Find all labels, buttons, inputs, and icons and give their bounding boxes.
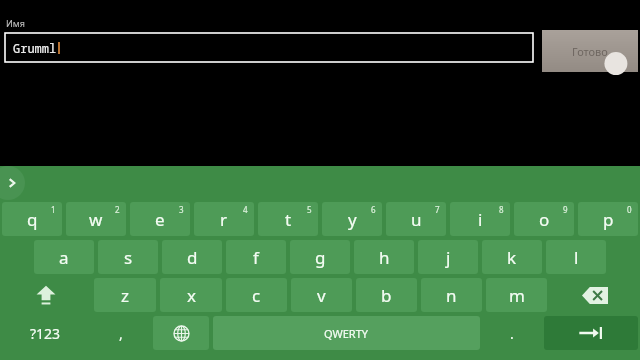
- button[interactable]: Готово: [542, 30, 638, 72]
- button[interactable]: ,: [93, 316, 149, 350]
- button[interactable]: Next field: [544, 316, 638, 350]
- staticText: y: [348, 208, 357, 231]
- button[interactable]: h: [354, 240, 414, 274]
- staticText: h: [379, 246, 390, 269]
- button[interactable]: ?123: [2, 316, 89, 350]
- button[interactable]: m: [486, 278, 547, 312]
- staticText: x: [187, 284, 196, 307]
- staticText: b: [381, 284, 392, 307]
- staticText: e: [155, 208, 165, 231]
- button[interactable]: Shift: [2, 278, 90, 312]
- staticText: QWERTY: [324, 326, 369, 341]
- staticText: t: [285, 208, 292, 231]
- button[interactable]: Backspace: [551, 278, 638, 312]
- staticText: c: [252, 284, 261, 307]
- staticText: d: [187, 246, 198, 269]
- staticText: 8: [499, 204, 504, 215]
- button[interactable]: d: [162, 240, 222, 274]
- button[interactable]: Expand suggestions: [0, 166, 25, 200]
- button[interactable]: c: [226, 278, 287, 312]
- staticText: f: [253, 246, 259, 269]
- staticText: p: [603, 208, 614, 231]
- staticText: 0: [627, 204, 632, 215]
- button[interactable]: r: [194, 202, 254, 236]
- staticText: l: [574, 246, 579, 269]
- button[interactable]: .: [484, 316, 540, 350]
- button[interactable]: s: [98, 240, 158, 274]
- staticText: a: [59, 246, 69, 269]
- staticText: 3: [179, 204, 184, 215]
- button[interactable]: w: [66, 202, 126, 236]
- button[interactable]: j: [418, 240, 478, 274]
- button[interactable]: l: [546, 240, 606, 274]
- staticText: u: [411, 208, 422, 231]
- button[interactable]: q: [2, 202, 62, 236]
- staticText: g: [315, 246, 326, 269]
- button[interactable]: n: [421, 278, 482, 312]
- staticText: n: [446, 284, 457, 307]
- staticText: Имя: [6, 17, 25, 29]
- staticText: 7: [435, 204, 440, 215]
- button[interactable]: a: [34, 240, 94, 274]
- staticText: Grumml: [13, 40, 57, 56]
- staticText: 1: [51, 204, 56, 215]
- staticText: m: [509, 284, 525, 307]
- button[interactable]: Change keyboard language: [153, 316, 209, 350]
- button[interactable]: y: [322, 202, 382, 236]
- staticText: i: [478, 208, 483, 231]
- staticText: 9: [563, 204, 568, 215]
- staticText: j: [446, 246, 451, 269]
- staticText: r: [220, 208, 228, 231]
- staticText: 6: [371, 204, 376, 215]
- button[interactable]: e: [130, 202, 190, 236]
- button[interactable]: b: [356, 278, 417, 312]
- button[interactable]: o: [514, 202, 574, 236]
- button[interactable]: p: [578, 202, 638, 236]
- button[interactable]: v: [291, 278, 352, 312]
- button[interactable]: f: [226, 240, 286, 274]
- button[interactable]: i: [450, 202, 510, 236]
- staticText: ,: [119, 324, 123, 343]
- button[interactable]: u: [386, 202, 446, 236]
- staticText: 4: [243, 204, 248, 215]
- staticText: ?123: [30, 324, 61, 343]
- staticText: 5: [307, 204, 312, 215]
- button[interactable]: k: [482, 240, 542, 274]
- staticText: .: [510, 324, 514, 343]
- button[interactable]: Grumml: [5, 33, 533, 62]
- button[interactable]: z: [94, 278, 156, 312]
- button[interactable]: QWERTY: [213, 316, 480, 350]
- staticText: Готово: [572, 44, 608, 59]
- staticText: 2: [115, 204, 120, 215]
- button[interactable]: x: [160, 278, 222, 312]
- staticText: k: [507, 246, 517, 269]
- staticText: o: [539, 208, 550, 231]
- staticText: q: [27, 208, 38, 231]
- staticText: s: [124, 246, 133, 269]
- staticText: w: [89, 208, 103, 231]
- button[interactable]: g: [290, 240, 350, 274]
- staticText: z: [121, 284, 129, 307]
- button[interactable]: t: [258, 202, 318, 236]
- staticText: v: [317, 284, 326, 307]
